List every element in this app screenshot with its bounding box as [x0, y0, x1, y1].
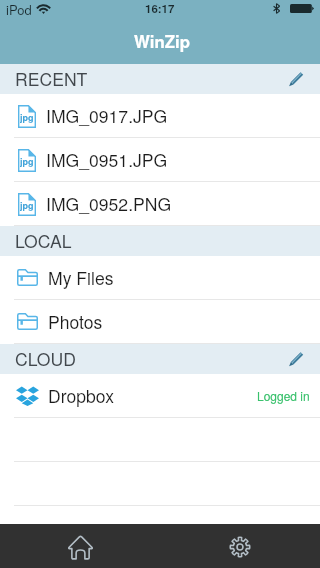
button[interactable]: My Files — [0, 256, 320, 299]
staticText: IMG_0917.JPG — [46, 103, 168, 128]
staticText: WinZip — [134, 29, 190, 53]
button[interactable]: Edit — [276, 344, 320, 374]
button[interactable]: Photos — [0, 300, 320, 343]
button[interactable]: Settings — [160, 524, 320, 568]
staticText: RECENT — [15, 66, 88, 91]
staticText: My Files — [48, 265, 114, 290]
staticText: Photos — [48, 309, 103, 334]
staticText: IMG_0951.JPG — [46, 147, 168, 172]
button[interactable]: jpg — [0, 94, 320, 137]
button[interactable]: Home — [0, 524, 160, 568]
staticText: jpg — [20, 111, 34, 124]
button[interactable]: jpg — [0, 138, 320, 181]
staticText: Dropbox — [48, 383, 114, 408]
staticText: 16:17 — [145, 0, 175, 16]
staticText: CLOUD — [15, 346, 76, 371]
staticText: iPod — [6, 0, 32, 16]
staticText: jpg — [20, 199, 34, 212]
staticText: jpg — [20, 155, 34, 168]
staticText: LOCAL — [15, 228, 72, 253]
staticText: Logged in — [257, 387, 310, 404]
button[interactable]: Dropbox — [0, 374, 320, 417]
button[interactable]: Edit — [276, 64, 320, 94]
button[interactable]: jpg — [0, 182, 320, 225]
staticText: IMG_0952.PNG — [46, 191, 172, 216]
